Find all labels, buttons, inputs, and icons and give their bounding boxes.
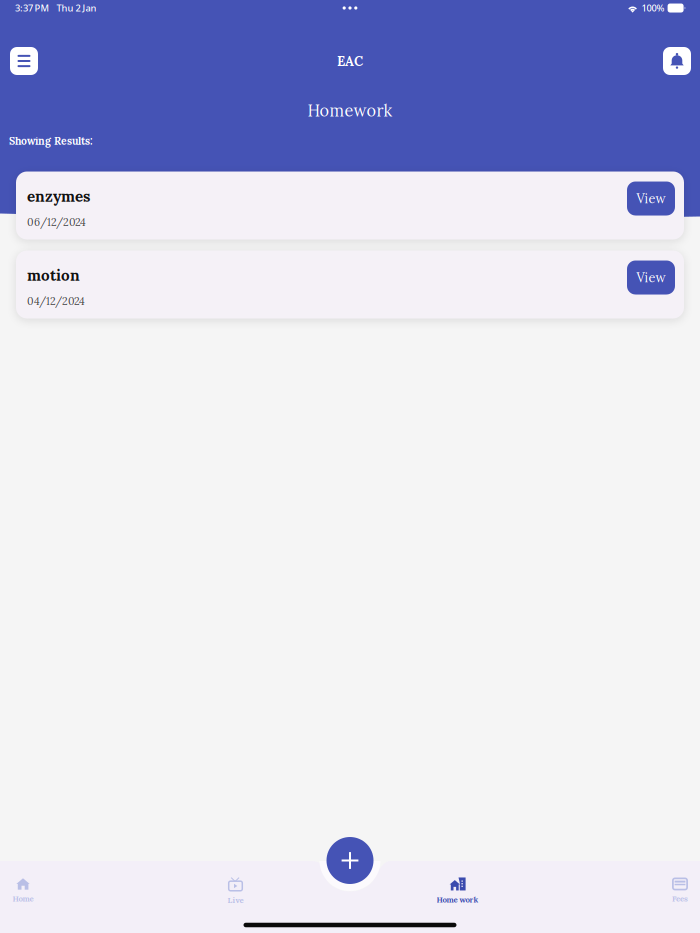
- staticText: PM: [34, 2, 49, 14]
- staticText: View: [636, 269, 665, 286]
- staticText: Fees: [672, 894, 688, 904]
- button[interactable]: Menu: [10, 47, 38, 75]
- button[interactable]: Notifications: [663, 47, 691, 75]
- staticText: Homework: [307, 100, 392, 121]
- staticText: Home work: [436, 894, 478, 905]
- button[interactable]: Add: [326, 837, 373, 884]
- button[interactable]: View: [627, 181, 675, 215]
- staticText: 100%: [642, 2, 665, 14]
- button[interactable]: Live: [191, 869, 279, 913]
- staticText: Showing Results:: [9, 134, 93, 148]
- staticText: enzymes: [27, 186, 90, 206]
- button[interactable]: Home work: [413, 869, 501, 913]
- staticText: 3:37: [15, 2, 33, 14]
- staticText: Live: [227, 895, 243, 905]
- staticText: View: [636, 190, 665, 207]
- staticText: Thu 2 Jan: [56, 2, 96, 14]
- button[interactable]: Fees: [636, 869, 700, 913]
- staticText: Home: [12, 894, 33, 904]
- button[interactable]: Home: [0, 869, 67, 913]
- button[interactable]: View: [627, 260, 675, 294]
- staticText: motion: [27, 265, 80, 285]
- staticText: 06/12/2024: [27, 215, 86, 229]
- staticText: EAC: [337, 52, 363, 70]
- staticText: 04/12/2024: [27, 294, 85, 308]
